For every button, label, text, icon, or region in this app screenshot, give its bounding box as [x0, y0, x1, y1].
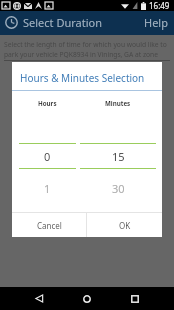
button[interactable]: Back	[16, 287, 62, 310]
button[interactable]: Clock	[4, 15, 19, 30]
staticText: 15	[112, 149, 125, 164]
staticText: Select the length of time for which you …	[4, 40, 170, 59]
staticText: 0	[44, 149, 51, 164]
staticText: OK	[119, 220, 131, 231]
staticText: 30	[112, 181, 125, 196]
button[interactable]: Hours	[19, 91, 76, 212]
staticText: Help	[144, 15, 168, 30]
staticText: Hours	[38, 99, 57, 107]
staticText: 1	[44, 181, 51, 196]
button[interactable]: Home	[64, 287, 110, 310]
staticText: Hours & Minutes Selection	[20, 71, 145, 85]
button[interactable]: Help	[142, 15, 170, 30]
staticText: Cancel	[37, 220, 62, 231]
button[interactable]: OK	[87, 213, 162, 237]
button[interactable]: Cancel	[12, 213, 86, 237]
button[interactable]: Minutes	[80, 91, 156, 212]
button[interactable]: Recents	[112, 287, 158, 310]
staticText: Select Duration	[23, 15, 102, 30]
staticText: Minutes	[105, 99, 131, 107]
staticText: 16:49	[149, 0, 170, 11]
